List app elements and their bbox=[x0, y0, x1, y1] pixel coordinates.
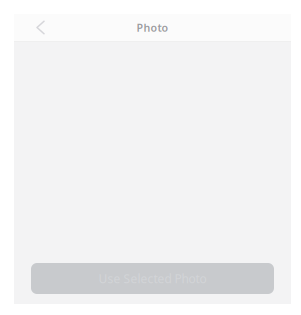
button[interactable]: Use Selected Photo bbox=[14, 263, 291, 304]
button[interactable]: Back bbox=[29, 15, 52, 40]
staticText: Photo bbox=[136, 20, 168, 35]
